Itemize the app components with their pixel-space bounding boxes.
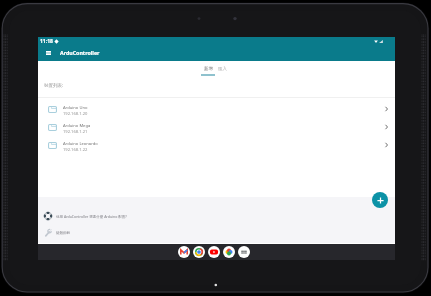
staticText: 192.168.1.22 <box>63 147 88 153</box>
staticText: 裝置列表: <box>44 82 64 88</box>
button[interactable]: Open navigation menu <box>42 47 54 59</box>
button[interactable]: Chrome <box>193 246 205 258</box>
button[interactable]: Arduino Leonardo <box>38 136 395 154</box>
button[interactable]: 匯入 <box>215 61 229 78</box>
staticText: 使用 ArduController 需要什麼 Arduino 配置? <box>56 214 127 219</box>
button[interactable]: 疑難排解 <box>38 225 395 241</box>
button[interactable]: Photos <box>223 246 235 258</box>
button[interactable]: All apps <box>238 246 250 258</box>
staticText: Arduino Leonardo <box>63 141 98 147</box>
button[interactable]: Gmail <box>178 246 190 258</box>
staticText: Arduino Uno <box>63 105 88 111</box>
staticText: ArduController <box>60 49 100 56</box>
staticText: 匯入 <box>218 66 227 72</box>
button[interactable]: 新增 <box>201 61 215 78</box>
staticText: 11:18 <box>40 38 53 45</box>
button[interactable]: YouTube <box>208 246 220 258</box>
button[interactable]: 使用 ArduController 需要什麼 Arduino 配置? <box>38 208 395 224</box>
button[interactable]: Arduino Uno <box>38 100 395 118</box>
staticText: Arduino Mega <box>63 123 91 129</box>
staticText: 192.168.1.20 <box>63 111 88 117</box>
staticText: 192.168.1.21 <box>63 129 88 135</box>
staticText: 新增 <box>204 66 213 72</box>
button[interactable]: Add device <box>372 192 388 208</box>
staticText: 疑難排解 <box>56 231 70 235</box>
button[interactable]: Arduino Mega <box>38 118 395 136</box>
